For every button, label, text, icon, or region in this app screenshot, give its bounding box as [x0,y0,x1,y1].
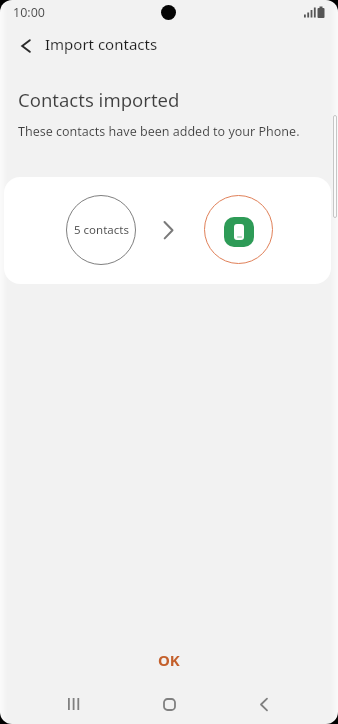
button[interactable] [56,686,92,722]
button[interactable]: OK [138,640,200,680]
button[interactable] [151,686,187,722]
staticText: Import contacts [45,34,158,54]
staticText: Contacts imported [18,87,180,112]
staticText: These contacts have been added to your P… [18,123,300,140]
button[interactable] [246,686,282,722]
staticText: OK [158,650,180,670]
staticText: 10:00 [13,4,45,21]
button[interactable] [11,32,39,60]
staticText: 5 contacts [74,222,129,238]
